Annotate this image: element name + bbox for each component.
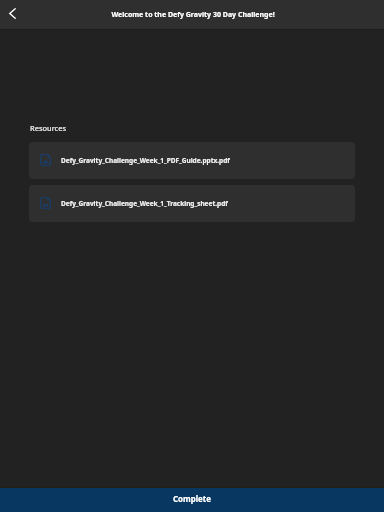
- button[interactable]: Defy_Gravity_Challenge_Week_1_PDF_Guide.…: [29, 142, 355, 179]
- button[interactable]: Complete: [0, 488, 384, 512]
- button[interactable]: Defy_Gravity_Challenge_Week_1_Tracking_s…: [29, 185, 355, 222]
- staticText: Defy_Gravity_Challenge_Week_1_PDF_Guide.…: [61, 156, 230, 165]
- staticText: Welcome to the Defy Gravity 30 Day Chall…: [111, 10, 275, 20]
- button[interactable]: Navigate back: [5, 6, 19, 20]
- staticText: Complete: [173, 494, 211, 505]
- staticText: Resources: [30, 123, 67, 133]
- staticText: Defy_Gravity_Challenge_Week_1_Tracking_s…: [61, 199, 228, 208]
